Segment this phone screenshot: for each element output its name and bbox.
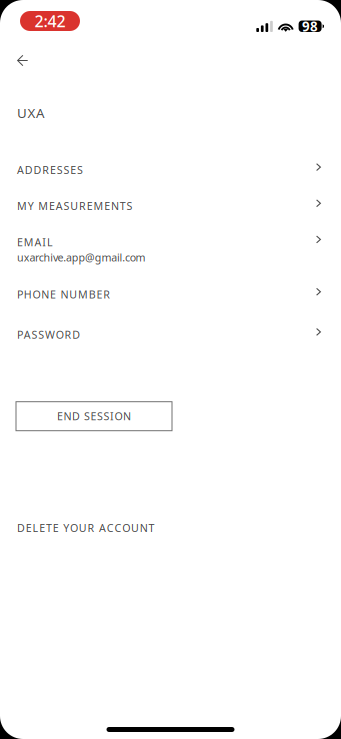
- staticText: PHONE NUMBER: [17, 287, 110, 302]
- staticText: 98: [302, 17, 318, 35]
- button[interactable]: Back: [0, 47, 45, 74]
- button[interactable]: DELETE YOUR ACCOUNT: [0, 516, 171, 540]
- staticText: ADDRESSES: [17, 163, 83, 177]
- staticText: uxarchive.app@gmail.com: [17, 250, 145, 264]
- staticText: PASSWORD: [17, 327, 80, 342]
- button[interactable]: PASSWORD: [0, 327, 341, 342]
- button[interactable]: PHONE NUMBER: [0, 287, 341, 302]
- button[interactable]: EMAIL: [0, 235, 341, 264]
- staticText: 2:42: [34, 10, 65, 32]
- button[interactable]: END SESSION: [16, 402, 172, 431]
- button[interactable]: MY MEASUREMENTS: [0, 199, 341, 213]
- button[interactable]: ADDRESSES: [0, 163, 341, 177]
- staticText: UXA: [17, 104, 45, 122]
- staticText: END SESSION: [57, 409, 131, 423]
- staticText: MY MEASUREMENTS: [17, 199, 132, 213]
- staticText: DELETE YOUR ACCOUNT: [17, 521, 154, 535]
- staticText: EMAIL: [17, 235, 53, 249]
